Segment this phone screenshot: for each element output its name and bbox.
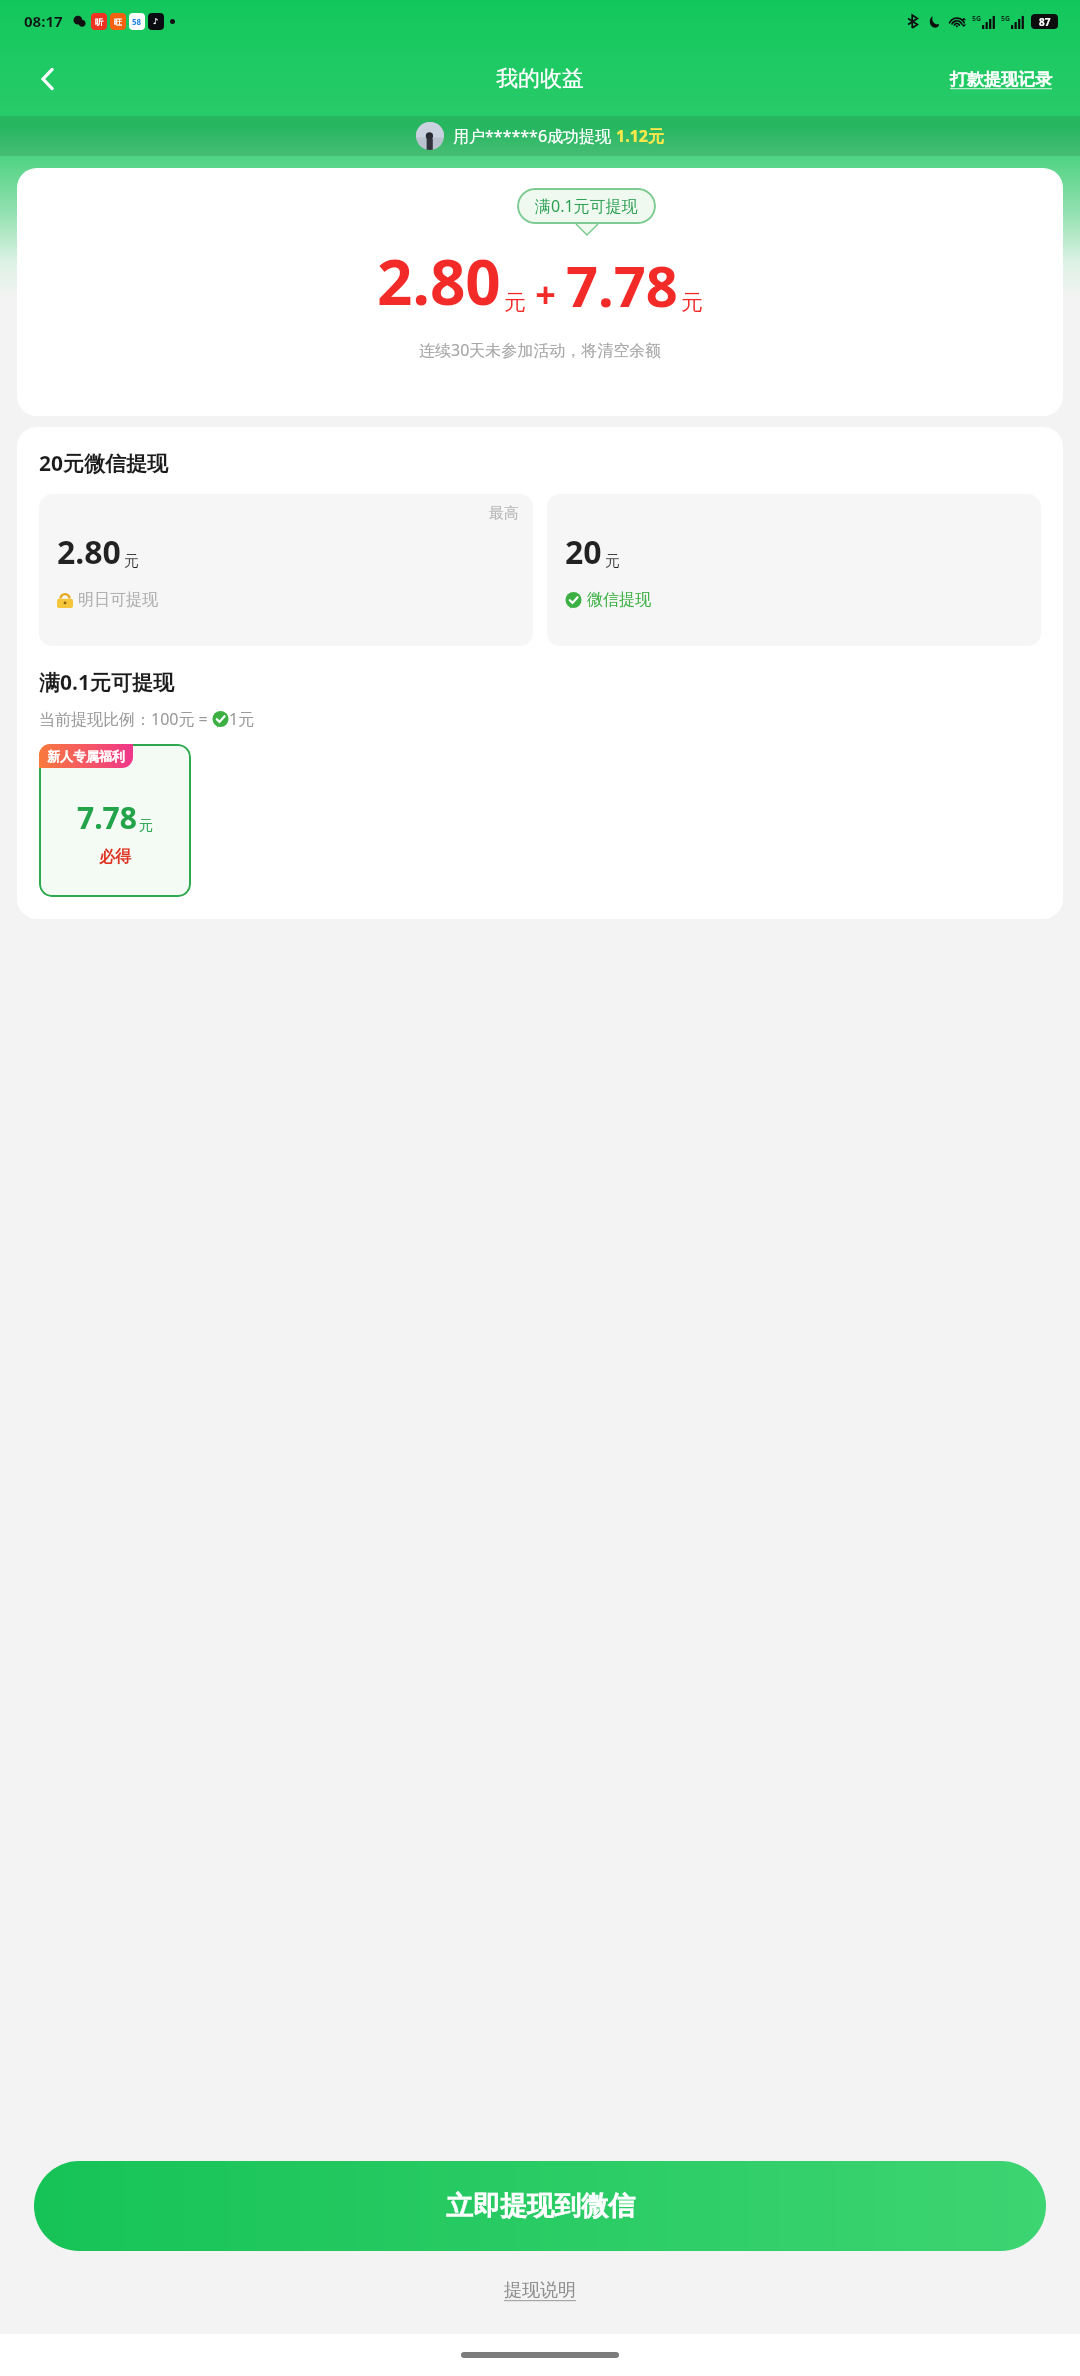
staticText: 打款提现记录 [950, 69, 1052, 90]
staticText: 元 [605, 552, 620, 571]
staticText: 当前提现比例：100元 = [39, 708, 212, 730]
staticText: 立即提现到微信 [446, 2189, 635, 2223]
staticText: 最高 [489, 504, 519, 523]
staticText: 7.78 [77, 797, 137, 838]
staticText: 1元 [229, 708, 255, 730]
button[interactable]: 立即提现到微信 [34, 2161, 1046, 2251]
staticText: 连续30天未参加活动，将清空余额 [419, 339, 662, 361]
staticText: 元 [504, 289, 526, 317]
staticText: 用户******6成功提现 [453, 125, 616, 147]
staticText: 7.78 [566, 247, 678, 323]
staticText: 87 [1039, 15, 1051, 29]
staticText: 5G [972, 14, 982, 24]
staticText: 2.80 [57, 530, 121, 574]
staticText: 1.12元 [616, 125, 664, 147]
staticText: 我的收益 [496, 65, 584, 93]
staticText: 新人专属福利 [47, 748, 125, 764]
staticText: 满0.1元可提现 [39, 668, 174, 697]
staticText: 2.80 [377, 239, 501, 323]
staticText: ♪ [153, 17, 159, 26]
staticText: 听 [95, 17, 103, 27]
staticText: 微信提现 [587, 590, 651, 610]
button[interactable]: 提现说明 [498, 2273, 582, 2308]
staticText: + [526, 270, 566, 319]
staticText: 元 [681, 289, 703, 317]
staticText: 元 [139, 817, 153, 835]
staticText: 5G [1001, 14, 1011, 24]
staticText: 08:17 [24, 11, 63, 31]
staticText: 58 [132, 16, 142, 27]
staticText: 20元微信提现 [39, 449, 169, 478]
button[interactable]: Back [26, 57, 70, 101]
staticText: 旺 [114, 17, 122, 27]
staticText: 元 [124, 552, 139, 571]
staticText: 提现说明 [504, 2279, 576, 2302]
staticText: 明日可提现 [78, 590, 158, 610]
staticText: 20 [565, 530, 602, 574]
staticText: 必得 [99, 847, 131, 867]
button[interactable]: 20 [547, 494, 1041, 646]
button[interactable]: 7.78 [39, 744, 191, 897]
button[interactable]: 打款提现记录 [944, 63, 1058, 96]
button[interactable]: 最高 [39, 494, 533, 646]
staticText: 满0.1元可提现 [535, 195, 638, 217]
